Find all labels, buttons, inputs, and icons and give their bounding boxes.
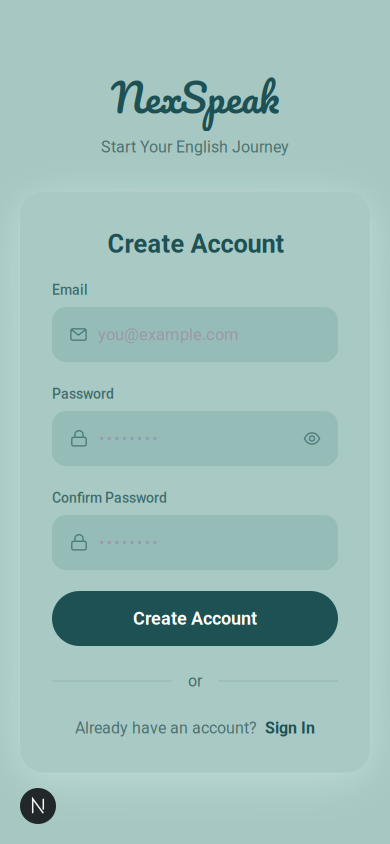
button[interactable]: Next.js dev tools bbox=[20, 788, 56, 824]
button[interactable]: Create Account bbox=[52, 591, 338, 646]
staticText: or bbox=[188, 672, 202, 690]
staticText: Create Account bbox=[133, 608, 257, 629]
button[interactable]: Show password bbox=[300, 427, 324, 449]
staticText: Sign In bbox=[265, 719, 315, 737]
button[interactable]: NexSpeak bbox=[45, 71, 345, 123]
staticText: Password bbox=[52, 386, 114, 402]
staticText: Email bbox=[52, 282, 88, 298]
staticText: Create Account bbox=[107, 229, 284, 259]
button[interactable]: Already have an account? bbox=[52, 717, 338, 739]
staticText: Start Your English Journey bbox=[101, 138, 289, 156]
staticText: NexSpeak bbox=[111, 63, 279, 131]
staticText: Already have an account? bbox=[75, 719, 257, 737]
staticText: Confirm Password bbox=[52, 490, 167, 506]
staticText: you@example.com bbox=[98, 325, 239, 344]
